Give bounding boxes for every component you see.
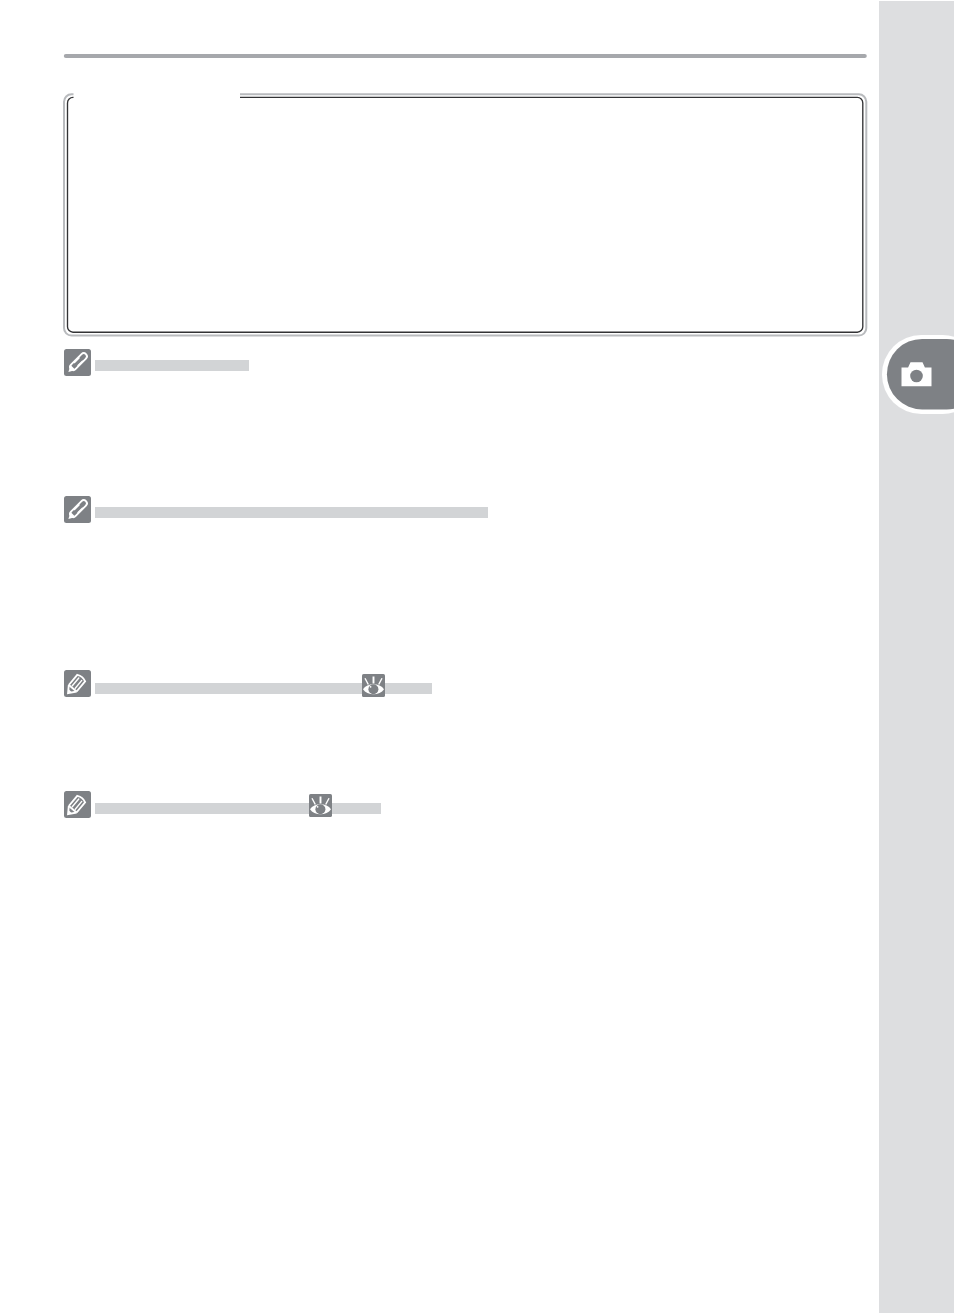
button[interactable]: Edit — [64, 791, 91, 818]
button[interactable]: Edit — [64, 349, 91, 376]
button[interactable]: Edit — [64, 670, 91, 697]
button[interactable]: Tool panel — [879, 1, 954, 1313]
button[interactable]: Edit — [64, 496, 91, 523]
button[interactable]: Reveal — [309, 794, 332, 817]
button[interactable]: Reveal — [362, 674, 385, 697]
button[interactable]: Camera — [882, 335, 954, 414]
